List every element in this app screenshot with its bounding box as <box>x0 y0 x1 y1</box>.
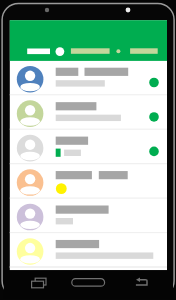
button[interactable]: Conversation 1 <box>10 61 167 95</box>
button[interactable]: Conversation 4 <box>10 164 167 198</box>
button[interactable]: Conversation 5 <box>10 199 167 233</box>
button[interactable]: Menu <box>24 44 46 66</box>
button[interactable]: Home <box>71 274 105 290</box>
button[interactable]: Conversation 6 <box>10 233 167 267</box>
button[interactable]: Back <box>134 274 152 292</box>
button[interactable]: Search <box>120 44 142 66</box>
button[interactable]: Recents <box>30 274 50 294</box>
button[interactable]: Conversation 2 <box>10 95 167 129</box>
button[interactable]: Conversation 3 <box>10 130 167 164</box>
